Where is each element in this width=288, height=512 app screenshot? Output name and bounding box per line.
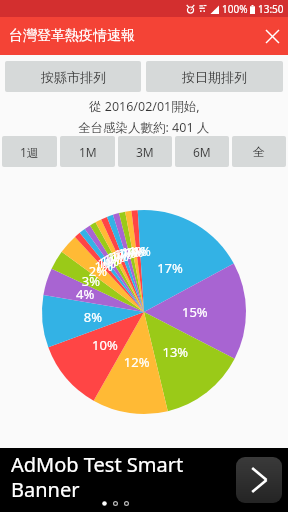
staticText: 從 2016/02/01開始, <box>89 98 200 115</box>
staticText: 100% <box>222 2 248 16</box>
staticText: 台灣登革熱疫情速報 <box>9 27 135 45</box>
button[interactable]: 按縣市排列 <box>5 61 141 92</box>
staticText: 全台感染人數約: 401 人 <box>78 119 210 136</box>
staticText: 13:50 <box>258 2 284 16</box>
staticText: 1M <box>79 144 97 160</box>
button[interactable]: 3M <box>118 136 172 167</box>
staticText: 6M <box>193 144 211 160</box>
staticText: 1週 <box>20 144 39 160</box>
staticText: AdMob Test Smart Banner <box>11 451 184 503</box>
staticText: 全 <box>253 144 265 159</box>
button[interactable]: 全 <box>232 136 286 167</box>
staticText: 3M <box>136 144 154 160</box>
button[interactable]: Next <box>236 457 282 503</box>
button[interactable]: 按日期排列 <box>146 61 283 92</box>
staticText: 按日期排列 <box>182 69 247 85</box>
button[interactable]: 1週 <box>2 136 57 167</box>
staticText: 按縣市排列 <box>41 69 106 85</box>
button[interactable]: Close <box>257 21 287 51</box>
button[interactable]: 1M <box>60 136 115 167</box>
button[interactable]: 6M <box>175 136 229 167</box>
